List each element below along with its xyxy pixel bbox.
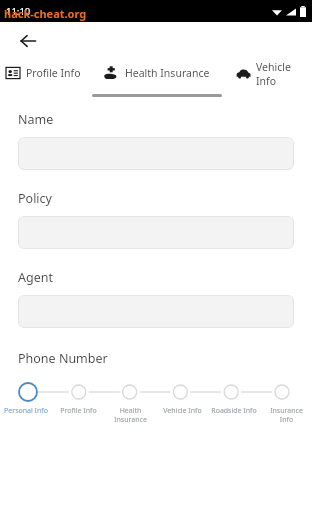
button[interactable] (18, 216, 294, 249)
staticText: Health Insurance (125, 66, 210, 80)
button[interactable] (18, 137, 294, 170)
staticText: hack-cheat.org (4, 6, 87, 21)
staticText: Insurance Info (270, 406, 303, 424)
staticText: Agent (18, 269, 53, 286)
button[interactable]: Health Insurance (98, 60, 232, 86)
button[interactable] (18, 295, 294, 328)
staticText: Phone Number (18, 350, 108, 367)
button[interactable]: Profile Info (0, 60, 98, 86)
button[interactable]: Health Insurance (104, 406, 156, 424)
staticText: Personal Info (4, 406, 48, 416)
staticText: Roadside Info (211, 406, 257, 416)
staticText: Profile Info (60, 406, 97, 416)
button[interactable]: Vehicle Info (232, 60, 312, 86)
button[interactable]: Vehicle Info (156, 406, 208, 416)
button[interactable]: Back (12, 25, 44, 57)
staticText: Policy (18, 190, 52, 207)
button[interactable]: Roadside Info (208, 406, 260, 416)
button[interactable]: Profile Info (52, 406, 104, 416)
button[interactable]: Insurance Info (260, 406, 312, 424)
staticText: Name (18, 111, 54, 128)
staticText: Profile Info (26, 66, 81, 80)
staticText: Vehicle Info (163, 406, 202, 416)
staticText: Vehicle Info (256, 60, 312, 86)
button[interactable]: Personal Info (0, 406, 52, 416)
staticText: 11:10 (6, 5, 31, 18)
staticText: Health Insurance (114, 406, 147, 424)
